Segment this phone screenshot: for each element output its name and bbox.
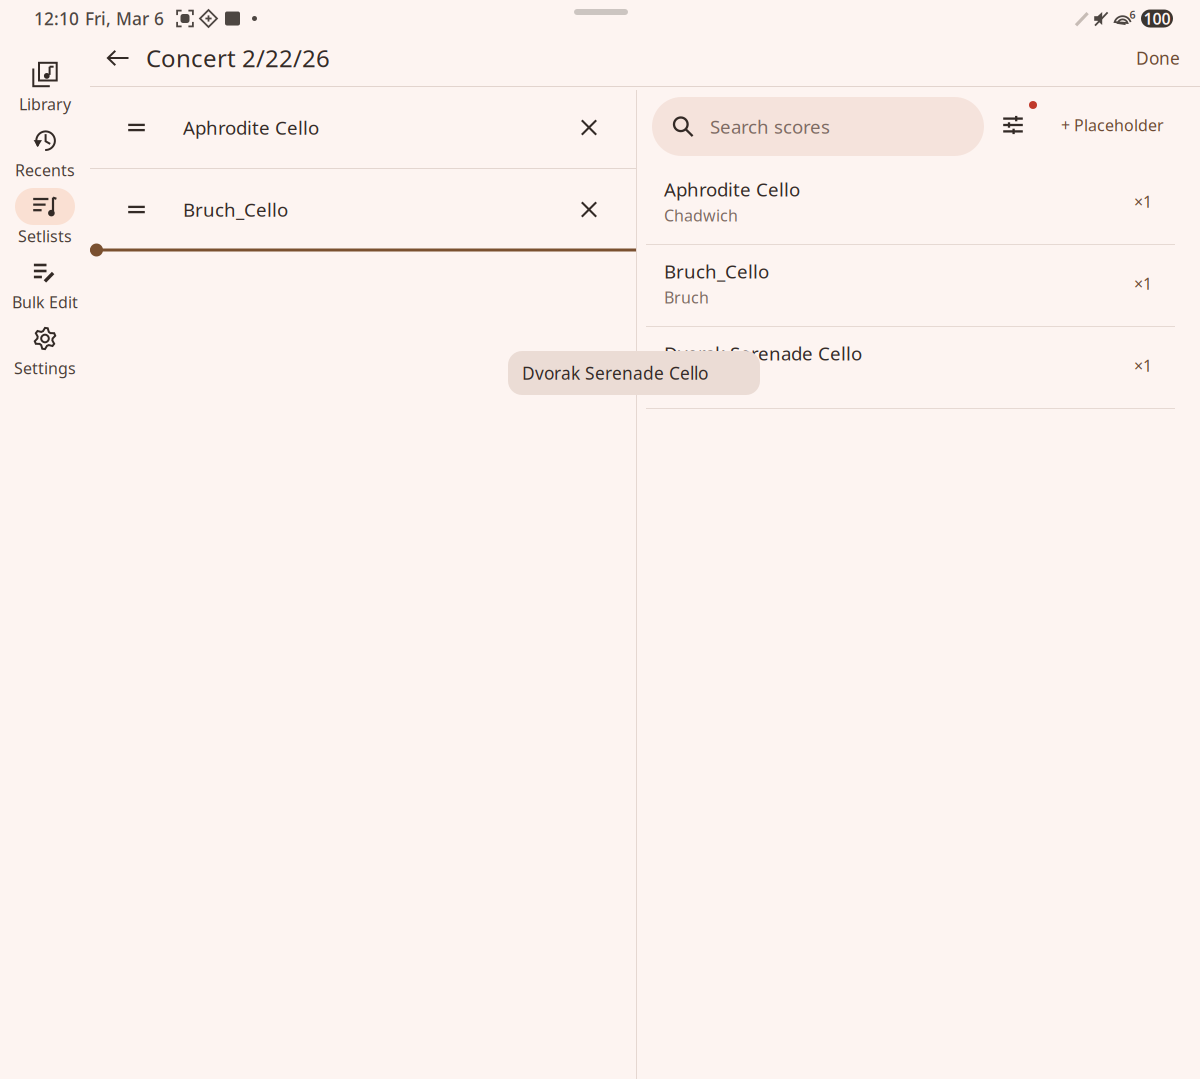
staticText: ×1 [1134,355,1152,376]
button[interactable]: Aphrodite Cello [637,163,1200,245]
staticText: Bruch [664,287,709,308]
button[interactable]: Aphrodite Cello [90,87,636,168]
button[interactable]: Bruch_Cello [90,169,636,250]
button[interactable]: Recents [0,122,90,181]
staticText: Chadwich [664,205,738,226]
button[interactable]: Search scores [652,94,984,156]
button[interactable]: Settings [0,320,90,379]
staticText: Aphrodite Cello [183,115,319,140]
staticText: Dvorak [664,369,718,390]
staticText: Setlists [18,225,72,247]
button[interactable]: Bruch_Cello [637,245,1200,327]
button[interactable]: Sort and filter [984,95,1042,154]
staticText: Search scores [710,114,830,139]
staticText: Done [1136,46,1180,69]
button[interactable]: Bulk Edit [0,254,90,313]
staticText: Library [19,93,71,115]
staticText: Bulk Edit [12,291,78,313]
staticText: Concert 2/22/26 [146,42,330,74]
staticText: Aphrodite Cello [664,177,800,202]
button[interactable]: + Placeholder [1042,95,1172,154]
button[interactable]: Dvorak Serenade Cello [637,327,1200,409]
staticText: 12:10 [34,7,79,30]
staticText: Settings [14,357,76,379]
staticText: Dvorak Serenade Cello [522,361,708,384]
staticText: ×1 [1134,273,1152,294]
button[interactable]: Remove Aphrodite Cello from setlist [562,100,616,154]
staticText: 100 [1143,8,1170,29]
button[interactable]: Setlists [0,188,90,247]
button[interactable]: Done [1124,32,1192,84]
staticText: Fri, Mar 6 [85,7,164,30]
button[interactable]: Remove Bruch_Cello from setlist [562,182,616,236]
staticText: Bruch_Cello [664,259,769,284]
button[interactable]: Back [101,32,135,84]
staticText: + Placeholder [1061,114,1164,136]
staticText: Dvorak Serenade Cello [664,341,862,366]
staticText: 6 [1129,7,1135,22]
staticText: Recents [15,159,75,181]
staticText: ×1 [1134,191,1152,212]
staticText: Bruch_Cello [183,197,288,222]
button[interactable]: Library [0,56,90,115]
